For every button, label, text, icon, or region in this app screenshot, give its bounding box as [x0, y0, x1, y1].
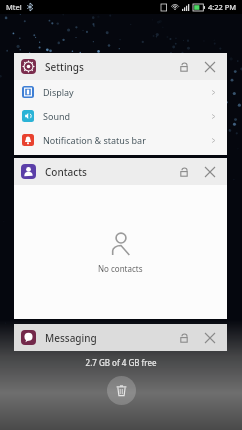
button[interactable]: Contacts: [14, 158, 227, 185]
button[interactable]: Lock app: [173, 327, 195, 349]
staticText: No contacts: [98, 263, 143, 274]
button[interactable]: Lock app: [173, 161, 195, 183]
staticText: Contacts: [45, 165, 87, 179]
staticText: Messaging: [45, 331, 97, 345]
button[interactable]: Clear all: [107, 376, 136, 405]
staticText: 4:22 PM: [208, 2, 237, 12]
button[interactable]: Display: [14, 80, 227, 104]
staticText: Display: [43, 86, 74, 98]
button[interactable]: Messaging: [14, 324, 227, 351]
staticText: Settings: [45, 60, 84, 74]
button[interactable]: Settings: [14, 53, 227, 80]
button[interactable]: Lock app: [173, 56, 195, 78]
staticText: Mtel: [6, 2, 22, 12]
button[interactable]: Sound: [14, 104, 227, 128]
button[interactable]: Notification & status bar: [14, 128, 227, 152]
button[interactable]: Close app: [199, 327, 221, 349]
button[interactable]: Close app: [199, 161, 221, 183]
button[interactable]: Close app: [199, 56, 221, 78]
staticText: Sound: [43, 110, 71, 122]
staticText: 2.7 GB of 4 GB free: [0, 357, 242, 368]
staticText: Notification & status bar: [43, 134, 146, 146]
